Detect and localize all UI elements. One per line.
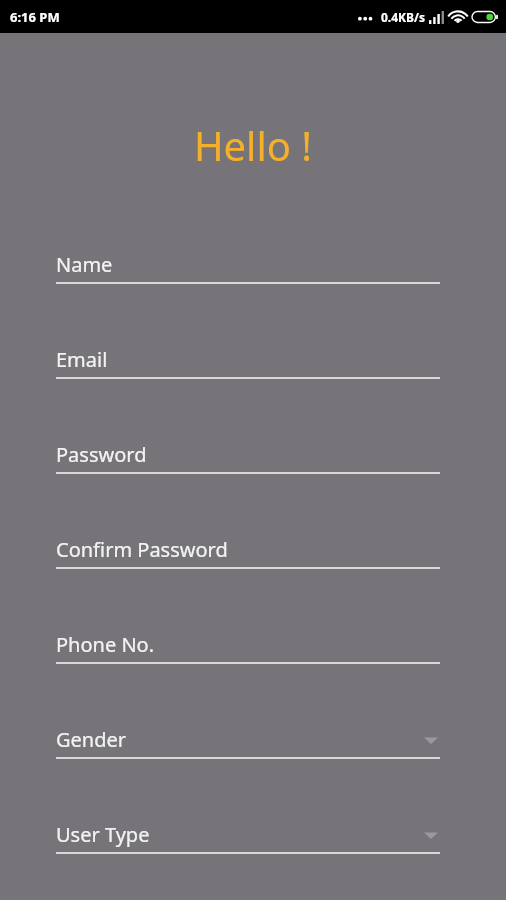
other: Open Gender dropdown (422, 733, 440, 747)
other: Open User Type dropdown (422, 828, 440, 842)
button[interactable]: User Type (56, 801, 440, 896)
staticText: Email (56, 346, 108, 373)
staticText: Phone No. (56, 631, 155, 658)
staticText: Name (56, 251, 113, 278)
button[interactable]: Password (56, 421, 440, 516)
button[interactable]: Confirm Password (56, 516, 440, 611)
staticText: 6:16 PM (10, 8, 60, 26)
staticText: Password (56, 441, 147, 468)
staticText: Gender (56, 726, 127, 753)
button[interactable]: Phone No. (56, 611, 440, 706)
button[interactable]: Email (56, 326, 440, 421)
staticText: User Type (56, 821, 150, 848)
staticText: Hello ! (0, 118, 506, 172)
button[interactable]: Name (56, 231, 440, 326)
staticText: Confirm Password (56, 536, 228, 563)
button[interactable]: Gender (56, 706, 440, 801)
staticText: 0.4KB/s (381, 9, 426, 25)
